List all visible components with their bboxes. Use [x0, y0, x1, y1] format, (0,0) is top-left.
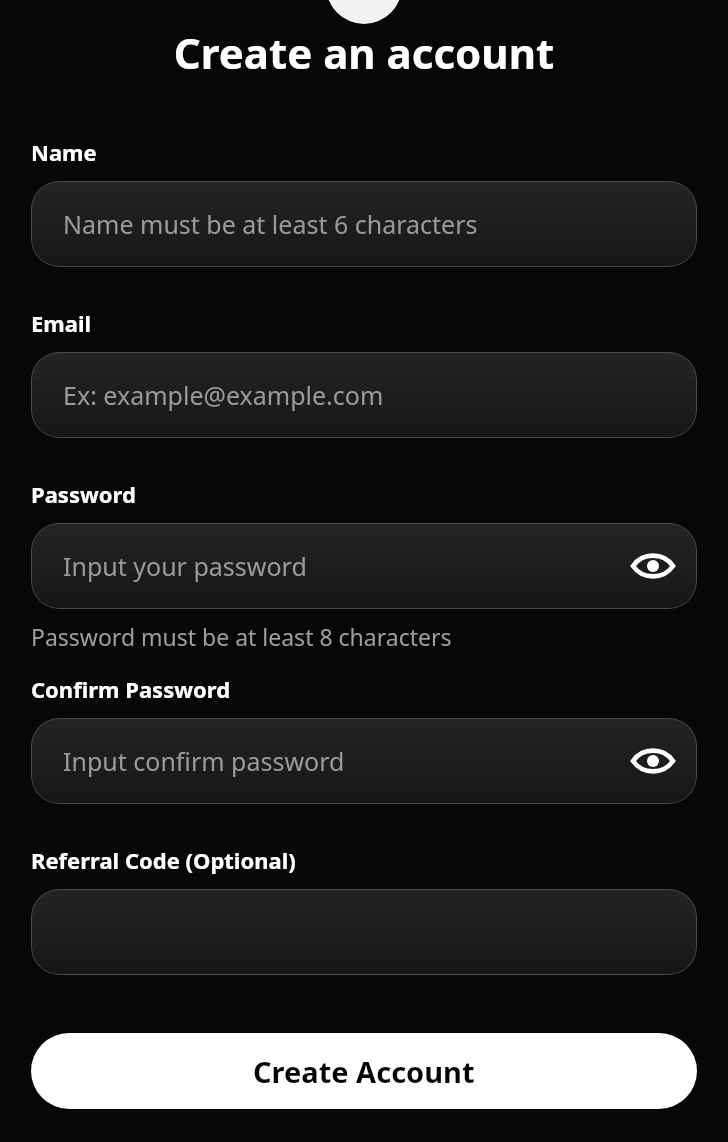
staticText: Name: [31, 137, 97, 167]
button[interactable]: [31, 889, 697, 975]
button[interactable]: Input your password: [31, 523, 697, 609]
staticText: Confirm Password: [31, 674, 231, 704]
button[interactable]: Name must be at least 6 characters: [31, 181, 697, 267]
staticText: Referral Code (Optional): [31, 845, 296, 875]
staticText: Create Account: [253, 1052, 475, 1091]
staticText: Password: [31, 479, 136, 509]
button[interactable]: Input confirm password: [31, 718, 697, 804]
staticText: Input your password: [63, 549, 307, 583]
button[interactable]: Show password: [625, 538, 681, 594]
button[interactable]: Show confirm password: [625, 733, 681, 789]
staticText: Name must be at least 6 characters: [63, 207, 478, 241]
staticText: Ex: example@example.com: [63, 378, 384, 412]
staticText: Create an account: [31, 24, 697, 81]
staticText: Password must be at least 8 characters: [31, 621, 452, 652]
button[interactable]: Create Account: [31, 1033, 697, 1109]
staticText: Email: [31, 308, 92, 338]
button[interactable]: Ex: example@example.com: [31, 352, 697, 438]
staticText: Input confirm password: [63, 744, 345, 778]
